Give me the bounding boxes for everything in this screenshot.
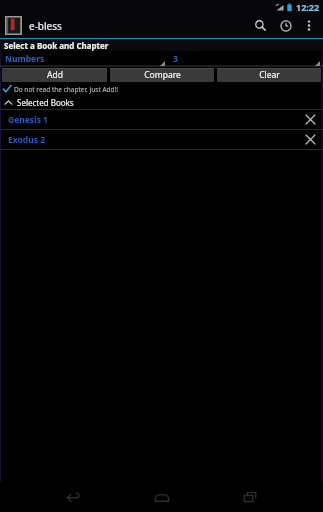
button[interactable]: Clear	[217, 68, 321, 82]
button[interactable]: Numbers	[0, 52, 168, 67]
staticText: Genesis 1	[8, 114, 48, 126]
staticText: Add	[47, 69, 63, 81]
staticText: Numbers	[5, 53, 45, 65]
button[interactable]: Remove Genesis 1	[297, 110, 323, 129]
button[interactable]: Search	[247, 13, 273, 38]
button[interactable]: 3	[168, 52, 323, 67]
button[interactable]: Remove Exodus 2	[297, 130, 323, 149]
staticText: Do not read the chapter. Just Add!!	[14, 85, 119, 94]
staticText: Exodus 2	[8, 134, 46, 146]
button[interactable]: Genesis 1	[0, 110, 323, 129]
button[interactable]: Compare	[110, 68, 214, 82]
button[interactable]: Recent apps	[233, 482, 267, 512]
button[interactable]: Do not read the chapter. Just Add!!	[0, 83, 323, 95]
staticText: 3	[173, 53, 178, 65]
button[interactable]: Home	[145, 482, 179, 512]
staticText: Select a Book and Chapter	[4, 40, 109, 51]
staticText: Compare	[144, 69, 181, 81]
button[interactable]: Info	[273, 13, 299, 38]
button[interactable]: More options	[299, 13, 319, 38]
button[interactable]: Exodus 2	[0, 130, 323, 149]
button[interactable]: Back	[56, 482, 90, 512]
button[interactable]: Selected Books	[0, 95, 323, 109]
staticText: Selected Books	[17, 97, 74, 108]
staticText: 12:22	[296, 1, 320, 13]
button[interactable]: Add	[2, 68, 107, 82]
staticText: Clear	[259, 69, 280, 81]
staticText: e-bless	[29, 19, 62, 33]
